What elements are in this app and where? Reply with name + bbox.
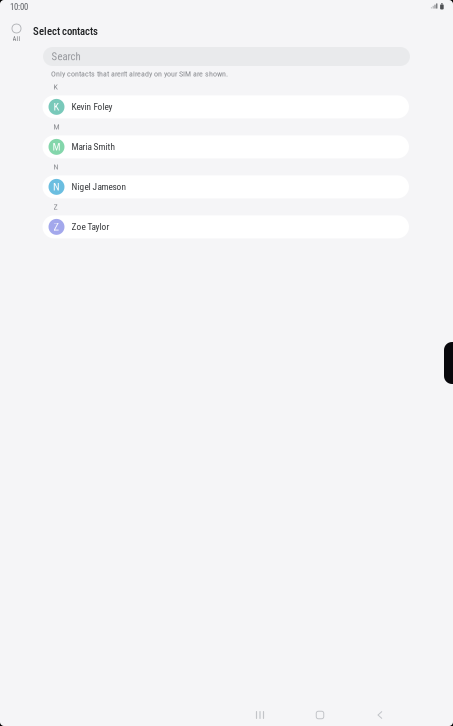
staticText: K — [53, 82, 57, 92]
staticText: Search — [51, 50, 80, 63]
staticText: Z — [53, 221, 59, 233]
staticText: Nigel Jameson — [71, 181, 126, 192]
staticText: M — [52, 141, 60, 153]
button[interactable]: Select all contacts — [0, 15, 33, 46]
staticText: Zoe Taylor — [71, 221, 109, 232]
button[interactable]: K — [42, 95, 409, 118]
button[interactable]: Back — [350, 700, 410, 726]
staticText: M — [53, 122, 59, 132]
staticText: N — [53, 162, 58, 172]
button[interactable]: Home — [290, 700, 350, 726]
staticText: Kevin Foley — [71, 101, 112, 112]
staticText: Maria Smith — [71, 141, 115, 152]
staticText: Select contacts — [33, 25, 98, 37]
button[interactable]: M — [42, 135, 409, 158]
button[interactable]: Recent apps — [230, 700, 290, 726]
staticText: All — [12, 35, 20, 43]
staticText: Z — [53, 202, 57, 212]
staticText: N — [53, 181, 60, 193]
button[interactable]: Search — [43, 47, 410, 66]
staticText: 10:00 — [10, 2, 28, 12]
staticText: Only contacts that aren't already on you… — [51, 69, 228, 78]
button[interactable]: N — [42, 175, 409, 198]
staticText: K — [53, 101, 59, 113]
button[interactable]: Z — [42, 215, 409, 238]
